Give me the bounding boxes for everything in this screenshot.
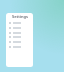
button[interactable] [6, 25, 33, 30]
button[interactable] [6, 20, 33, 25]
button[interactable] [6, 30, 33, 35]
button[interactable] [6, 39, 33, 44]
button[interactable] [6, 44, 33, 49]
button[interactable] [6, 34, 33, 39]
staticText: Settings [12, 14, 28, 19]
